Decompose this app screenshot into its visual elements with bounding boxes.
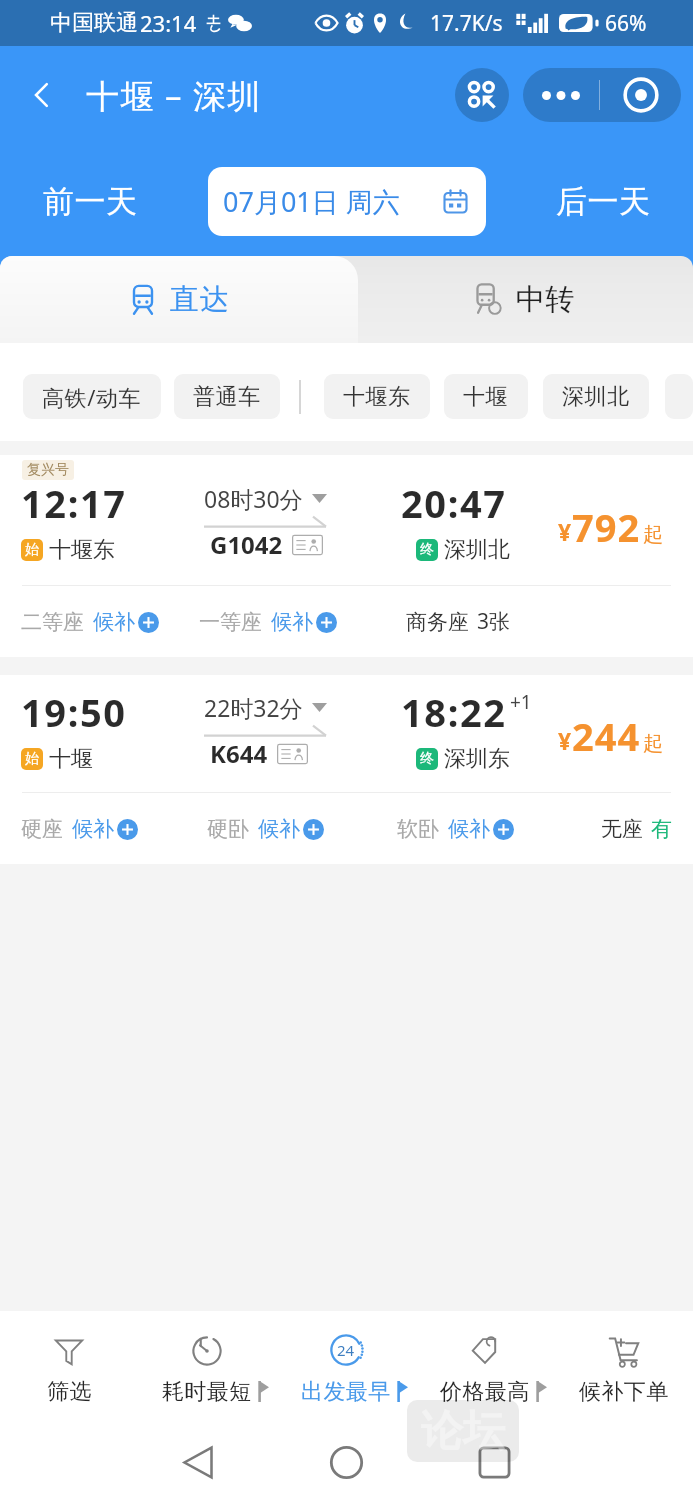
staticText: 有 [651,816,672,842]
button[interactable]: 07月01日 周六 [208,167,486,236]
button[interactable]: 19:50 [0,675,693,864]
staticText: 二等座 [21,609,84,635]
staticText: 候补 [93,609,135,635]
staticText: 17.7K/s [430,9,503,38]
button[interactable]: 十堰 [444,374,528,419]
button[interactable]: 候补下单 [554,1311,693,1425]
staticText: 普通车 [193,383,261,411]
button[interactable]: 价格最高 [415,1311,554,1425]
button[interactable]: 筛选 [0,1311,138,1425]
staticText: 后一天 [556,182,651,221]
staticText: 软卧 [397,816,439,842]
button[interactable]: 直达 [0,256,358,343]
button[interactable]: Back [154,1425,242,1500]
button[interactable]: 十堰东 [324,374,430,419]
staticText: 筛选 [47,1378,92,1406]
staticText: 23:14 [140,8,197,38]
staticText: 始 [25,750,39,768]
staticText: K644 [210,737,268,770]
staticText: ¥ [558,516,572,547]
button[interactable]: 深圳北 [543,374,649,419]
button[interactable]: 中转 [358,256,693,343]
button[interactable]: 耗时最短 [138,1311,276,1425]
staticText: 19:50 [21,686,127,738]
staticText: 十堰东 [49,536,115,564]
staticText: 07月01日 周六 [223,183,400,220]
button[interactable]: 前一天 [30,172,151,231]
staticText: 中转 [515,281,575,318]
staticText: 始 [25,541,39,559]
staticText: 价格最高 [440,1378,530,1406]
staticText: 深圳北 [444,536,510,564]
button[interactable]: 复兴号 [0,455,693,657]
staticText: 终 [420,541,434,559]
staticText: 出发最早 [301,1378,391,1406]
staticText: 24 [337,1340,355,1360]
staticText: 候补 [271,609,313,635]
staticText: 起 [643,731,663,756]
staticText: 深圳东 [444,745,510,773]
button[interactable]: 普通车 [174,374,280,419]
button[interactable]: Scan code [455,68,509,122]
staticText: 候补 [448,816,490,842]
staticText: 十堰 – 深圳 [86,73,263,118]
staticText: 深圳北 [562,383,630,411]
staticText: 直达 [169,281,229,318]
staticText: 66% [605,9,647,38]
button[interactable]: Back [16,69,68,121]
staticText: 244 [572,710,641,762]
staticText: 复兴号 [27,461,69,479]
staticText: 硬卧 [207,816,249,842]
staticText: 候补 [72,816,114,842]
button[interactable]: 高铁/动车 [23,374,161,419]
staticText: 十堰 [49,745,93,773]
staticText: 中国联通 [50,9,138,37]
button[interactable]: More options [523,68,599,122]
staticText: 20:47 [401,477,507,529]
staticText: 十堰 [463,383,509,411]
staticText: 十堰东 [343,383,411,411]
staticText: 硬座 [21,816,63,842]
staticText: 无座 [601,816,643,842]
staticText: 起 [643,522,663,547]
staticText: 08时30分 [204,483,303,514]
staticText: 高铁/动车 [42,382,142,412]
staticText: 792 [572,501,641,553]
button[interactable]: 24 [276,1311,415,1425]
staticText: 一等座 [199,609,262,635]
staticText: 耗时最短 [162,1378,252,1406]
staticText: 前一天 [43,182,138,221]
staticText: 候补下单 [579,1378,669,1406]
button[interactable]: Close [600,68,681,122]
staticText: ¥ [558,725,572,756]
staticText: 论坛 [421,1405,505,1458]
staticText: +1 [510,689,532,715]
staticText: 22时32分 [204,692,303,723]
staticText: 终 [420,750,434,768]
staticText: G1042 [210,528,283,561]
button[interactable]: Home [302,1425,390,1500]
button[interactable]: Recents [450,1425,538,1500]
staticText: 12:17 [21,477,127,529]
staticText: 3张 [477,607,511,636]
staticText: 商务座 [406,609,469,635]
staticText: 候补 [258,816,300,842]
staticText: 18:22 [401,686,507,738]
button[interactable]: 后一天 [543,172,664,231]
